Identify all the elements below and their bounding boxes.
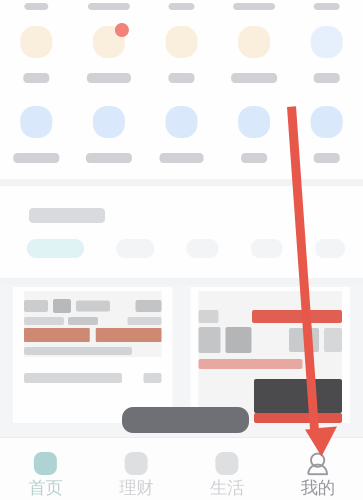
button[interactable]: Quick action <box>145 19 218 89</box>
button[interactable]: Quick action <box>0 99 73 169</box>
button[interactable]: Quick action <box>290 19 363 89</box>
button[interactable]: Quick action <box>0 19 73 89</box>
button[interactable]: Quick action <box>145 99 218 169</box>
button[interactable]: Category filter <box>116 239 154 258</box>
button[interactable]: Quick action <box>290 99 363 169</box>
staticText: 生活 <box>210 477 244 498</box>
button[interactable]: Quick action <box>218 19 290 89</box>
button[interactable]: 首页 <box>0 438 91 500</box>
staticText: 我的 <box>301 477 335 498</box>
button[interactable]: Category filter <box>186 239 218 258</box>
button[interactable]: 生活 <box>181 438 272 500</box>
button[interactable]: Quick action <box>73 99 145 169</box>
button[interactable]: Quick action <box>73 19 145 89</box>
button[interactable]: 理财 <box>91 438 182 500</box>
button[interactable]: Product <box>190 287 350 423</box>
button[interactable]: Category filter <box>251 239 283 258</box>
button[interactable]: Category filter <box>315 239 345 258</box>
button[interactable]: Product <box>13 287 172 423</box>
staticText: 首页 <box>28 477 62 498</box>
staticText: 理财 <box>119 477 153 498</box>
button[interactable]: Category filter <box>27 239 84 258</box>
button[interactable]: Quick action <box>218 99 290 169</box>
button[interactable]: 我的 <box>272 438 363 500</box>
